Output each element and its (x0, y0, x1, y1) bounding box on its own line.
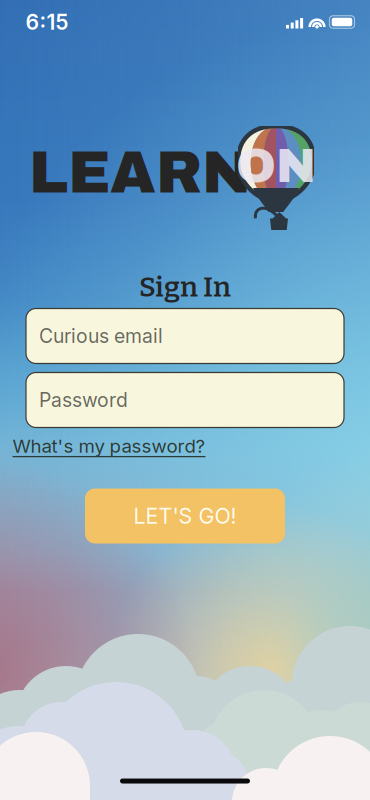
staticText: Sign In (139, 270, 231, 304)
staticText: 6:15 (25, 9, 68, 35)
staticText: LET'S GO! (133, 503, 236, 529)
button[interactable]: Password (26, 372, 344, 427)
staticText: ON (236, 140, 316, 192)
staticText: Password (39, 388, 128, 412)
button[interactable]: LET'S GO! (85, 488, 285, 543)
staticText: What's my password? (12, 435, 205, 457)
button[interactable]: Curious email (26, 308, 344, 363)
staticText: LEARN (29, 141, 251, 205)
button[interactable]: What's my password? (6, 429, 211, 463)
staticText: Curious email (39, 324, 163, 348)
